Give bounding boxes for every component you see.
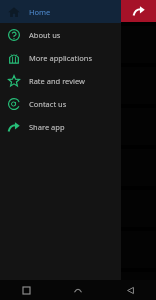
staticText: More applications bbox=[29, 53, 92, 63]
staticText: Share app bbox=[29, 122, 65, 132]
button[interactable] bbox=[2, 108, 154, 145]
button[interactable] bbox=[2, 272, 154, 300]
button[interactable]: Back bbox=[104, 280, 156, 300]
button[interactable]: About us bbox=[0, 23, 121, 46]
button[interactable]: Share app bbox=[0, 115, 121, 138]
staticText: About us bbox=[29, 30, 61, 40]
button[interactable] bbox=[2, 231, 154, 268]
button[interactable]: Rate and review bbox=[0, 69, 121, 92]
button[interactable] bbox=[2, 67, 154, 104]
button[interactable]: Share bbox=[121, 0, 156, 22]
button[interactable]: Contact us bbox=[0, 92, 121, 115]
staticText: Contact us bbox=[29, 99, 67, 109]
button[interactable]: Home bbox=[52, 280, 104, 300]
button[interactable]: Recent apps bbox=[0, 280, 52, 300]
button[interactable] bbox=[2, 149, 154, 186]
staticText: Rate and review bbox=[29, 76, 85, 86]
button[interactable] bbox=[2, 26, 154, 63]
button[interactable]: Home bbox=[0, 0, 121, 23]
button[interactable] bbox=[2, 190, 154, 227]
button[interactable]: More applications bbox=[0, 46, 121, 69]
staticText: Home bbox=[29, 7, 51, 17]
